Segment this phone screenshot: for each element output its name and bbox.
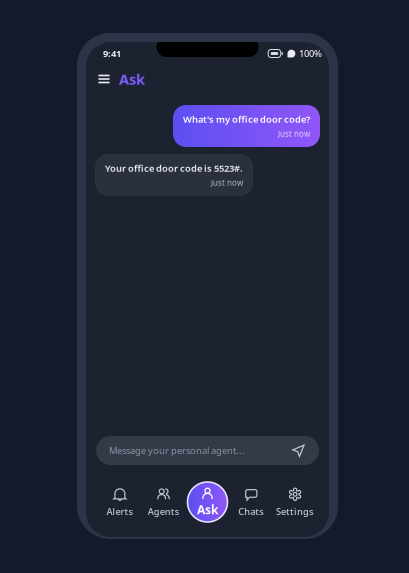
staticText: Message your personal agent... (109, 444, 245, 457)
staticText: Agents (148, 505, 180, 518)
button[interactable]: Settings (273, 482, 317, 522)
button[interactable]: Menu (98, 70, 110, 88)
button[interactable]: Ask (186, 482, 229, 522)
button[interactable]: Chats (229, 482, 273, 522)
staticText: Your office door code is 5523#. (105, 162, 243, 174)
staticText: Just now (211, 177, 243, 188)
staticText: Ask (119, 69, 145, 89)
staticText: 9:41 (103, 47, 121, 60)
button[interactable]: Alerts (98, 482, 142, 522)
staticText: Ask (197, 501, 218, 517)
staticText: Just now (278, 128, 310, 139)
staticText: Chats (238, 505, 264, 518)
staticText: 100% (299, 47, 322, 60)
staticText: What's my office door code? (183, 113, 310, 125)
staticText: Alerts (106, 505, 133, 518)
staticText: Settings (276, 505, 314, 518)
button[interactable]: Send (291, 443, 306, 458)
button[interactable]: Agents (142, 482, 186, 522)
